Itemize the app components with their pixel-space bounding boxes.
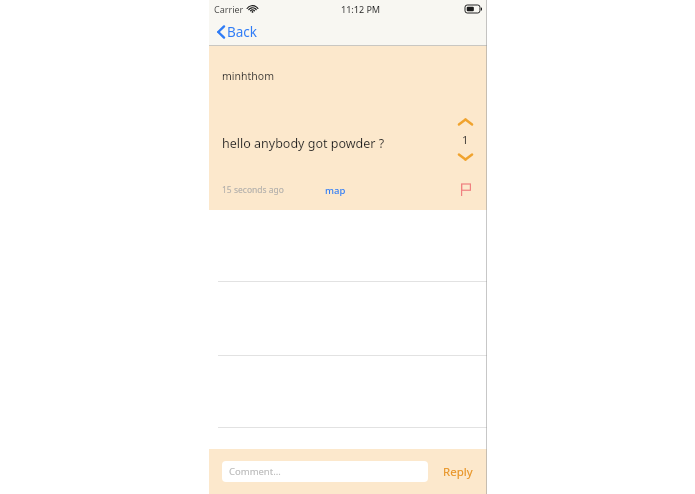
button[interactable]: Report [458, 181, 474, 199]
staticText: Back [227, 23, 258, 41]
button[interactable] [209, 356, 487, 428]
staticText: map [325, 184, 346, 197]
staticText: hello anybody got powder ? [222, 135, 385, 152]
button[interactable]: Reply [439, 460, 477, 484]
staticText: Reply [443, 464, 473, 480]
button[interactable]: Upvote [455, 115, 476, 129]
staticText: 11:12 PM [341, 3, 381, 15]
staticText: 1 [462, 132, 469, 147]
button[interactable]: map [322, 182, 349, 199]
staticText: Comment... [229, 465, 281, 478]
button[interactable] [209, 282, 487, 356]
button[interactable]: Comment... [222, 461, 428, 482]
button[interactable] [209, 210, 487, 282]
button[interactable]: Back [213, 19, 262, 45]
staticText: 15 seconds ago [222, 184, 284, 196]
staticText: minhthom [222, 69, 274, 83]
button[interactable]: Downvote [455, 150, 476, 164]
staticText: Carrier [214, 3, 244, 15]
